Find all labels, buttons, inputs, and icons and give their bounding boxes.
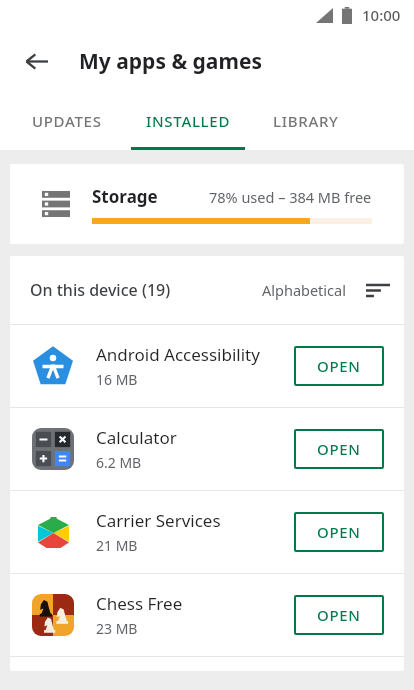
button[interactable]: LIBRARY	[250, 92, 362, 150]
staticText: 23 MB	[96, 619, 138, 638]
other: Sort	[366, 282, 390, 298]
staticText: OPEN	[317, 522, 361, 542]
staticText: Carrier Services	[96, 509, 221, 532]
staticText: LIBRARY	[273, 111, 339, 131]
staticText: Chess Free	[96, 592, 183, 615]
staticText: 6.2 MB	[96, 453, 142, 472]
staticText: 21 MB	[96, 536, 138, 555]
staticText: Storage	[92, 185, 158, 208]
staticText: 78% used – 384 MB free	[209, 187, 372, 207]
button[interactable]: OPEN	[294, 429, 384, 469]
button[interactable]: Alphabetical	[262, 280, 390, 300]
staticText: 16 MB	[96, 370, 138, 389]
staticText: OPEN	[317, 356, 361, 376]
staticText: INSTALLED	[146, 111, 231, 131]
staticText: OPEN	[317, 439, 361, 459]
button[interactable]: Back	[14, 39, 58, 83]
button[interactable]: Storage	[10, 164, 404, 244]
staticText: My apps & games	[79, 47, 262, 76]
button[interactable]: Android Accessibility Suite	[10, 325, 404, 407]
staticText: Calculator	[96, 426, 177, 449]
staticText: On this device (19)	[30, 279, 171, 301]
staticText: 10:00	[362, 5, 401, 25]
staticText: Alphabetical	[262, 280, 346, 300]
button[interactable]: Calculator	[10, 408, 404, 490]
staticText: OPEN	[317, 605, 361, 625]
button[interactable]: INSTALLED	[126, 92, 250, 150]
staticText: Android Accessibility Suite	[96, 343, 292, 366]
staticText: UPDATES	[32, 111, 102, 131]
button[interactable]: OPEN	[294, 346, 384, 386]
button[interactable]: OPEN	[294, 512, 384, 552]
button[interactable]: Carrier Services	[10, 491, 404, 573]
button[interactable]: Chess Free	[10, 574, 404, 656]
button[interactable]: OPEN	[294, 595, 384, 635]
button[interactable]: UPDATES	[8, 92, 126, 150]
